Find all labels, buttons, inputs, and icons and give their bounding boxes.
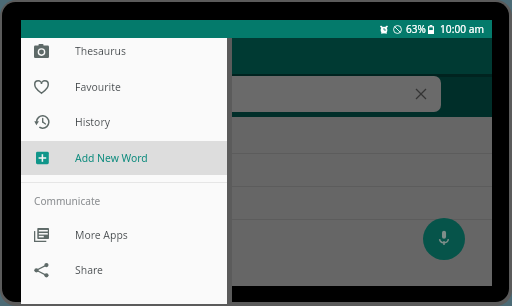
staticText: Favourite [75, 80, 121, 94]
staticText: 10:00 am [440, 22, 484, 36]
staticText: 63% [406, 22, 426, 36]
button[interactable]: Add New Word [21, 141, 227, 175]
button[interactable]: Clear search [416, 89, 426, 99]
staticText: Share [75, 263, 103, 277]
staticText: History [75, 115, 110, 129]
button[interactable]: History [21, 105, 227, 139]
staticText: Communicate [34, 194, 101, 208]
button[interactable]: Favourite [21, 70, 227, 104]
button[interactable]: Share [21, 253, 227, 287]
staticText: Add New Word [75, 151, 148, 165]
button[interactable]: More Apps [21, 218, 227, 252]
staticText: More Apps [75, 228, 128, 242]
button[interactable]: Clear search [29, 76, 441, 112]
staticText: Thesaurus [75, 44, 126, 58]
button[interactable]: Voice search [423, 218, 465, 260]
button[interactable]: Thesaurus [21, 34, 227, 68]
button: Communicate [21, 184, 227, 218]
